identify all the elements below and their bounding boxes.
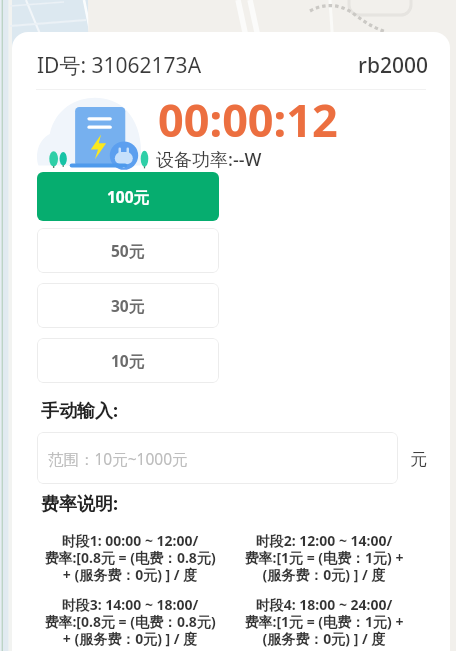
staticText: 30元: [111, 295, 145, 316]
staticText: 时段2: 12:00 ~ 14:00/ 费率:[1元 = (电费：1元) + (…: [227, 533, 421, 584]
staticText: ID号: 31062173A: [37, 51, 202, 80]
button[interactable]: 50元: [37, 228, 219, 273]
staticText: 时段1: 00:00 ~ 12:00/ 费率:[0.8元 = (电费：0.8元)…: [33, 533, 227, 584]
button[interactable]: 30元: [37, 283, 219, 328]
staticText: 50元: [111, 240, 145, 261]
staticText: 时段3: 14:00 ~ 18:00/ 费率:[0.8元 = (电费：0.8元)…: [33, 597, 227, 648]
staticText: 范围：10元~1000元: [48, 448, 188, 469]
button[interactable]: 范围：10元~1000元: [37, 432, 398, 484]
staticText: 设备功率:--W: [156, 147, 262, 172]
staticText: 费率说明:: [41, 491, 119, 516]
staticText: 元: [410, 449, 427, 470]
staticText: 时段4: 18:00 ~ 24:00/ 费率:[1元 = (电费：1元) + (…: [227, 597, 421, 648]
staticText: 手动输入:: [41, 398, 119, 423]
staticText: 00:00:12: [158, 89, 338, 150]
button[interactable]: 10元: [37, 338, 219, 383]
button[interactable]: 100元: [37, 172, 219, 221]
staticText: rb2000: [358, 51, 428, 80]
staticText: 100元: [107, 186, 150, 207]
staticText: 10元: [111, 350, 145, 371]
